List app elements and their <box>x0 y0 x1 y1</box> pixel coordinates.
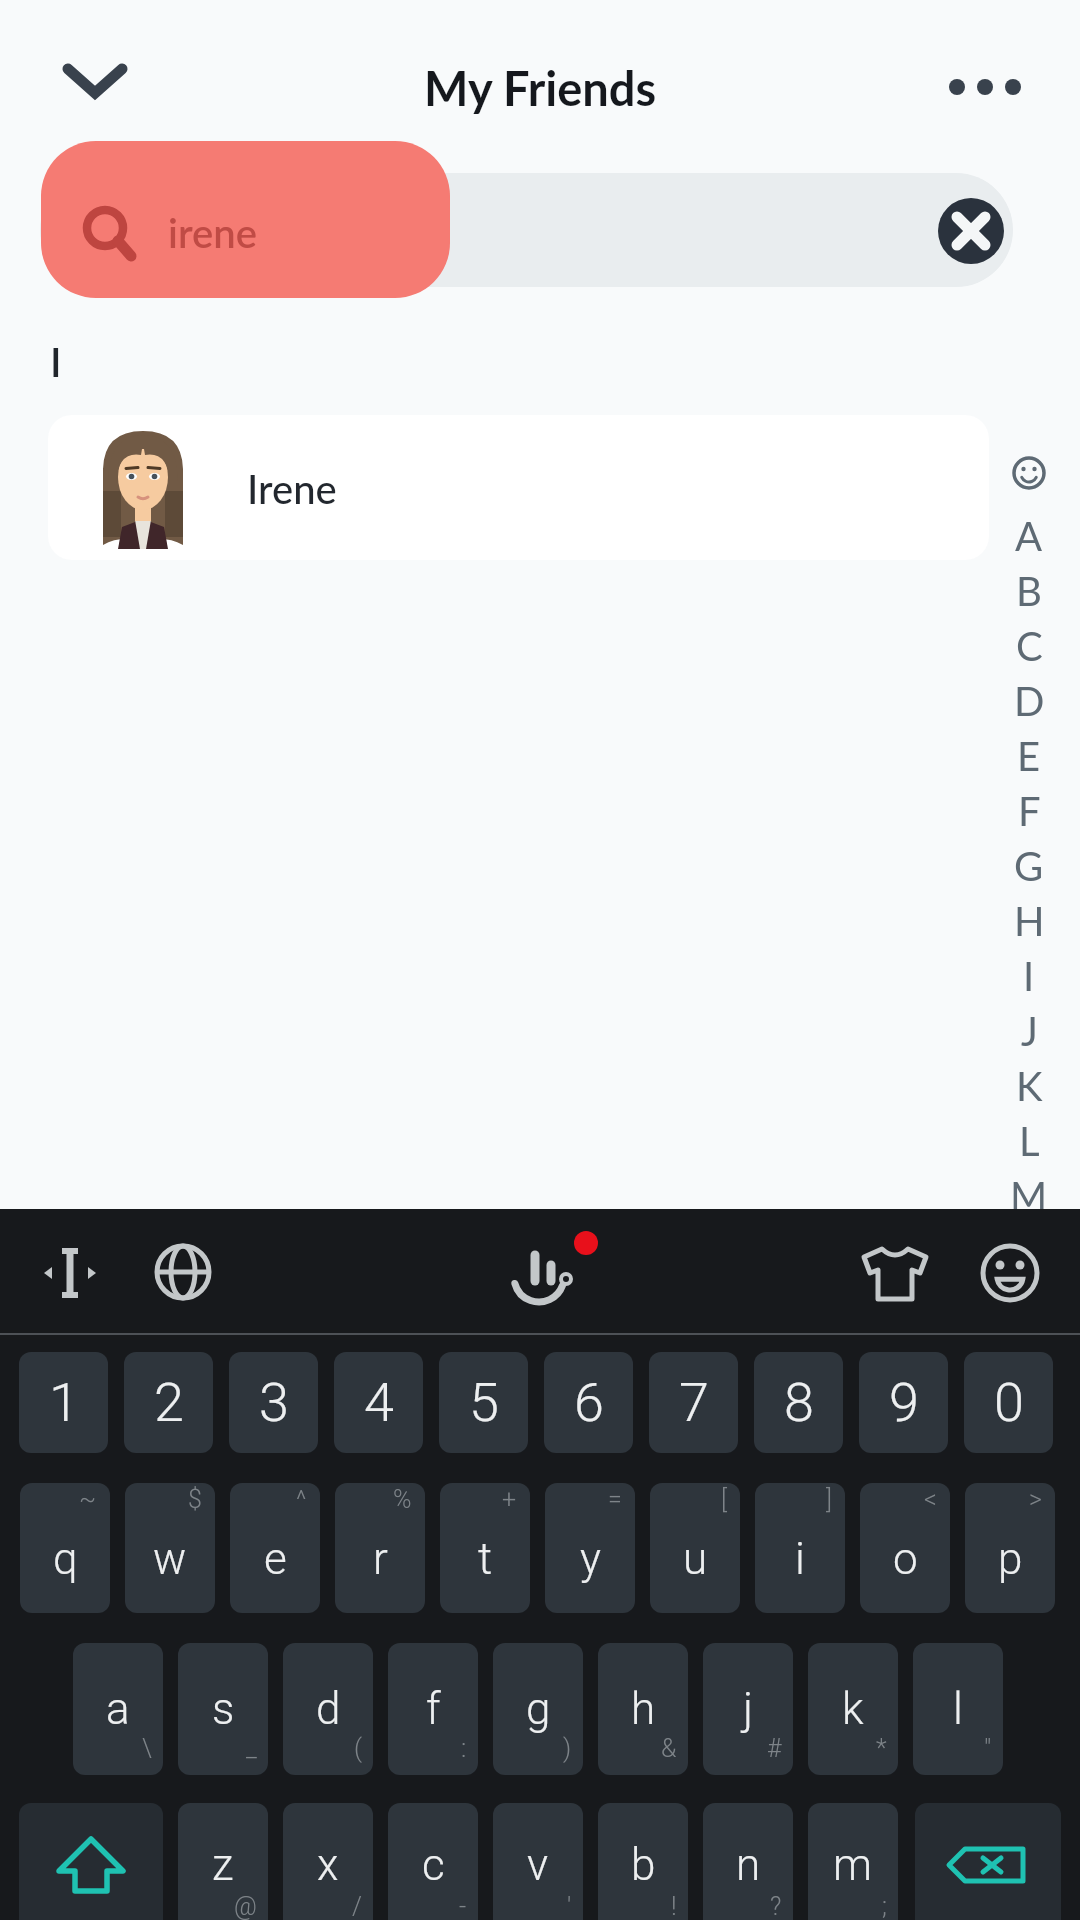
staticText: % <box>393 1485 412 1514</box>
button[interactable]: a <box>73 1643 163 1775</box>
button[interactable] <box>41 141 450 298</box>
staticText: g <box>526 1683 551 1735</box>
staticText: l <box>953 1683 963 1735</box>
staticText: * <box>876 1734 887 1763</box>
staticText: p <box>998 1533 1023 1585</box>
staticText: \ <box>142 1734 152 1763</box>
button[interactable]: d <box>283 1643 373 1775</box>
button[interactable] <box>978 1241 1042 1305</box>
staticText: / <box>352 1892 362 1920</box>
staticText: ! <box>671 1892 677 1920</box>
staticText: 6 <box>574 1371 604 1434</box>
button[interactable]: m <box>808 1803 898 1920</box>
staticText: a <box>106 1683 130 1735</box>
button[interactable]: g <box>493 1643 583 1775</box>
staticText: 8 <box>784 1371 814 1434</box>
button[interactable] <box>38 1245 102 1301</box>
staticText: " <box>984 1734 992 1763</box>
staticText: q <box>53 1533 78 1585</box>
staticText: My Friends <box>424 60 657 116</box>
button[interactable]: v <box>493 1803 583 1920</box>
button[interactable]: 5 <box>439 1352 528 1453</box>
staticText: i <box>795 1533 805 1585</box>
staticText: : <box>461 1734 467 1763</box>
button[interactable]: c <box>388 1803 478 1920</box>
button[interactable] <box>19 1803 163 1920</box>
staticText: = <box>608 1485 622 1514</box>
staticText: u <box>683 1533 708 1585</box>
staticText: 9 <box>889 1371 919 1434</box>
staticText: ^ <box>296 1485 307 1514</box>
button[interactable]: 9 <box>859 1352 948 1453</box>
staticText: m <box>833 1839 873 1891</box>
staticText: M <box>1010 1172 1048 1220</box>
button[interactable]: s <box>178 1643 268 1775</box>
staticText: v <box>527 1839 549 1891</box>
staticText: E <box>1017 732 1041 780</box>
button[interactable]: f <box>388 1643 478 1775</box>
button[interactable]: n <box>703 1803 793 1920</box>
button[interactable]: 8 <box>754 1352 843 1453</box>
staticText: s <box>212 1683 235 1735</box>
staticText: L <box>1019 1117 1040 1165</box>
button[interactable]: u <box>650 1483 740 1613</box>
staticText: k <box>842 1683 864 1735</box>
button[interactable]: 0 <box>964 1352 1053 1453</box>
button[interactable]: y <box>545 1483 635 1613</box>
staticText: y <box>580 1533 601 1585</box>
staticText: r <box>373 1533 388 1585</box>
staticText: $ <box>188 1485 202 1514</box>
button[interactable] <box>935 60 1035 115</box>
staticText: B <box>1016 567 1042 615</box>
staticText: H <box>1014 897 1045 945</box>
button[interactable]: x <box>283 1803 373 1920</box>
staticText: J <box>1021 1007 1038 1055</box>
staticText: z <box>212 1839 234 1891</box>
staticText: 3 <box>259 1371 289 1434</box>
button[interactable] <box>915 1803 1061 1920</box>
staticText: < <box>924 1485 937 1514</box>
staticText: > <box>1029 1485 1042 1514</box>
button[interactable]: i <box>755 1483 845 1613</box>
staticText: & <box>661 1734 677 1763</box>
button[interactable]: k <box>808 1643 898 1775</box>
staticText: ' <box>567 1892 572 1920</box>
button[interactable] <box>938 198 1004 264</box>
button[interactable]: 6 <box>544 1352 633 1453</box>
button[interactable]: 3 <box>229 1352 318 1453</box>
button[interactable]: 2 <box>124 1352 213 1453</box>
button[interactable] <box>505 1233 605 1313</box>
button[interactable]: 1 <box>19 1352 108 1453</box>
button[interactable]: j <box>703 1643 793 1775</box>
staticText: irene <box>168 209 257 257</box>
button[interactable]: p <box>965 1483 1055 1613</box>
staticText: n <box>736 1839 761 1891</box>
staticText: c <box>422 1839 445 1891</box>
button[interactable]: w <box>125 1483 215 1613</box>
button[interactable]: z <box>178 1803 268 1920</box>
staticText: ] <box>826 1485 832 1514</box>
button[interactable]: l <box>913 1643 1003 1775</box>
staticText: - <box>459 1892 467 1920</box>
button[interactable]: q <box>20 1483 110 1613</box>
staticText: Irene <box>247 465 337 513</box>
staticText: 2 <box>154 1371 184 1434</box>
button[interactable]: r <box>335 1483 425 1613</box>
button[interactable]: h <box>598 1643 688 1775</box>
button[interactable] <box>152 1241 214 1303</box>
staticText: w <box>153 1533 187 1585</box>
button[interactable]: Irene <box>48 415 989 560</box>
staticText: K <box>1016 1062 1043 1110</box>
button[interactable] <box>60 55 130 115</box>
button[interactable]: b <box>598 1803 688 1920</box>
button[interactable]: o <box>860 1483 950 1613</box>
button[interactable]: e <box>230 1483 320 1613</box>
staticText: 4 <box>364 1371 394 1434</box>
button[interactable]: 7 <box>649 1352 738 1453</box>
button[interactable] <box>860 1245 930 1305</box>
staticText: f <box>426 1683 441 1735</box>
staticText: x <box>317 1839 339 1891</box>
staticText: 1 <box>49 1371 79 1434</box>
button[interactable]: t <box>440 1483 530 1613</box>
button[interactable]: 4 <box>334 1352 423 1453</box>
